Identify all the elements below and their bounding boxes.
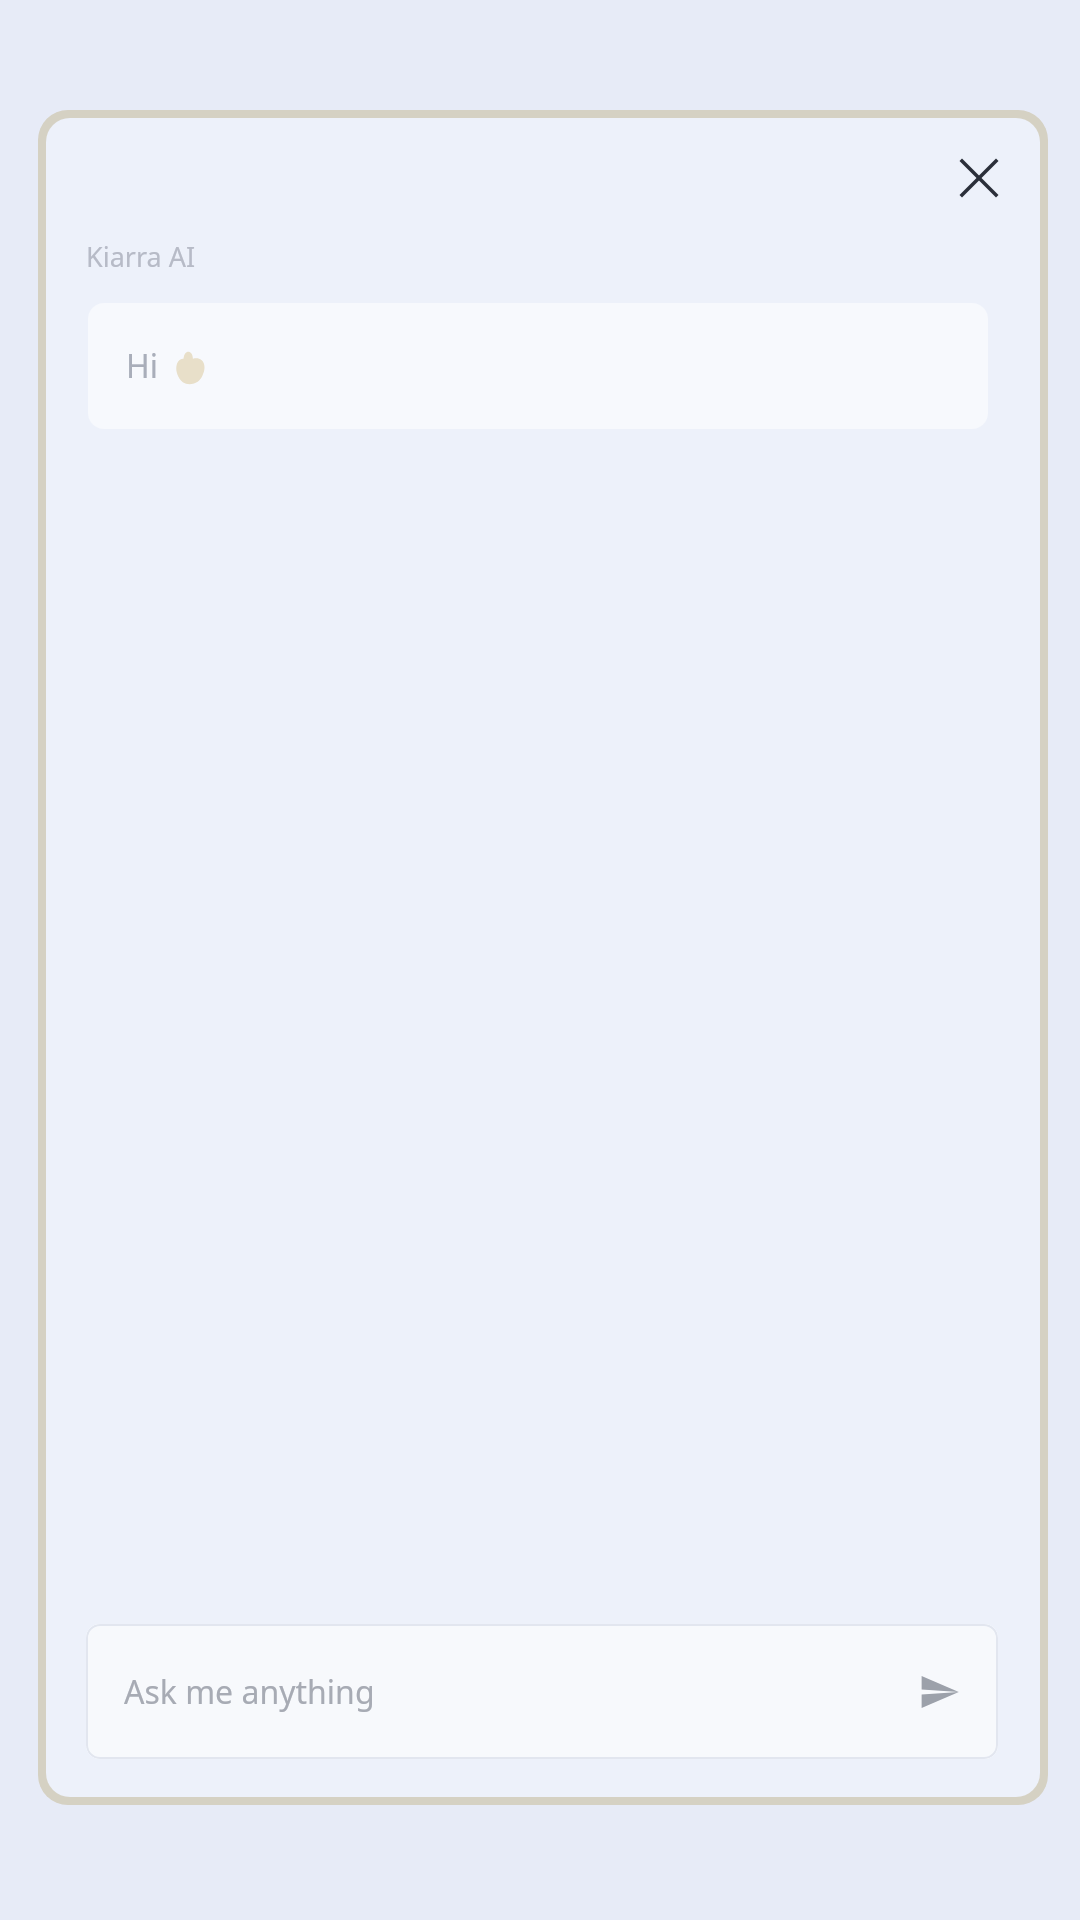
button[interactable]: Send: [908, 1660, 972, 1724]
button[interactable]: Hi: [88, 303, 988, 429]
button[interactable]: Ask me anything: [86, 1624, 998, 1759]
staticText: Kiarra AI: [86, 238, 196, 275]
staticText: Ask me anything: [124, 1670, 908, 1714]
button[interactable]: Close: [948, 147, 1010, 209]
staticText: Hi: [126, 344, 158, 388]
